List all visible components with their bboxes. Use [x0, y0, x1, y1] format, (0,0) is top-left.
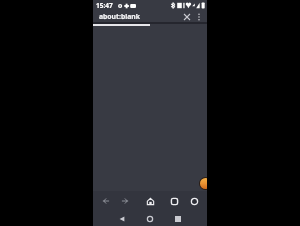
button[interactable]: Recents	[170, 211, 186, 226]
staticText: 15:47	[96, 1, 113, 10]
button[interactable]: Back	[114, 211, 130, 226]
button[interactable]: Account	[186, 193, 202, 209]
button[interactable]: Home	[142, 211, 158, 226]
button[interactable]: Stop loading	[182, 12, 192, 22]
button[interactable]: Tabs	[166, 193, 182, 209]
staticText: about:blank	[99, 12, 140, 21]
button[interactable]: Forward	[117, 193, 133, 209]
button[interactable]: Action button	[200, 178, 207, 189]
button[interactable]: Back	[98, 193, 114, 209]
button[interactable]: More options	[194, 12, 204, 22]
button[interactable]: Home	[142, 193, 158, 209]
